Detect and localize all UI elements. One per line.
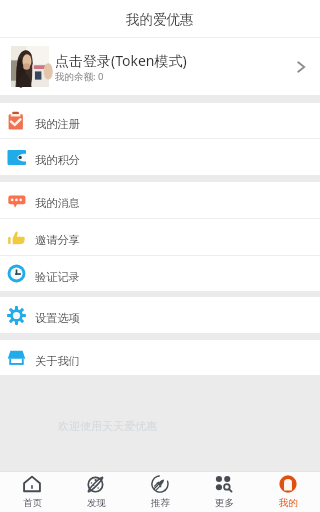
button[interactable]: 更多 [192, 475, 256, 509]
other: 进入 [291, 57, 311, 77]
button[interactable]: 我的注册 [0, 103, 320, 138]
button[interactable]: 关于我们 [0, 340, 320, 375]
button[interactable]: 我的 [256, 475, 320, 509]
staticText: 我的 [279, 497, 298, 509]
staticText: 首页 [23, 497, 42, 509]
staticText: 关于我们 [35, 354, 80, 368]
staticText: 点击登录(Token模式) [55, 51, 187, 70]
button[interactable]: 发现 [64, 475, 128, 509]
other: 发现 [87, 475, 105, 493]
button[interactable]: 邀请分享 [0, 219, 320, 255]
staticText: 设置选项 [35, 311, 80, 325]
staticText: 推荐 [151, 497, 170, 509]
staticText: 我的积分 [35, 153, 80, 167]
button[interactable]: 点击登录(Token模式) [0, 38, 320, 95]
staticText: 更多 [215, 497, 234, 509]
button[interactable]: 推荐 [128, 475, 192, 509]
staticText: 我的爱优惠 [126, 11, 194, 28]
button[interactable]: 设置选项 [0, 297, 320, 333]
staticText: 我的消息 [35, 196, 80, 210]
other: 更多 [215, 475, 233, 493]
button[interactable]: 首页 [0, 475, 64, 509]
staticText: 欢迎使用天天爱优惠 [58, 419, 157, 433]
other: 推荐 [151, 475, 169, 493]
staticText: 发现 [87, 497, 106, 509]
other: 我的 [279, 475, 297, 493]
button[interactable]: 我的积分 [0, 139, 320, 175]
staticText: 邀请分享 [35, 233, 80, 247]
staticText: 我的余额: 0 [55, 70, 104, 83]
other: 首页 [23, 475, 41, 493]
staticText: 验证记录 [35, 270, 80, 284]
staticText: 我的注册 [35, 117, 80, 131]
button[interactable]: 验证记录 [0, 256, 320, 291]
button[interactable]: 我的消息 [0, 182, 320, 218]
